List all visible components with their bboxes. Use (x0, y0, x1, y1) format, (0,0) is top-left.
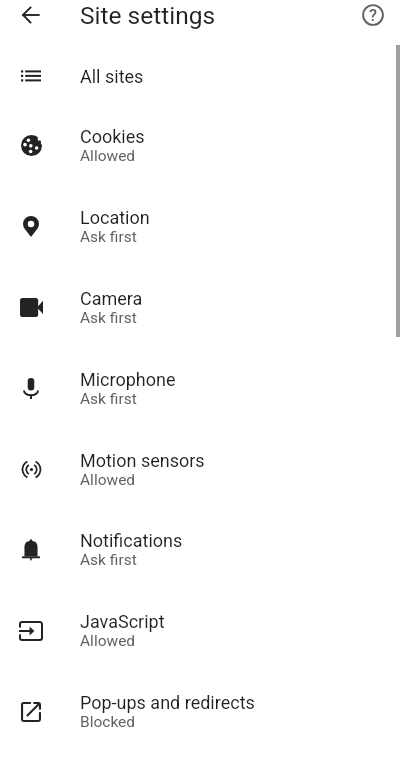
staticText: Pop-ups and redirects (80, 692, 255, 713)
staticText: Location (80, 207, 150, 228)
staticText: All sites (80, 66, 144, 87)
button[interactable]: Back (7, 0, 55, 31)
staticText: Ask first (80, 390, 137, 408)
button[interactable]: Location (0, 186, 400, 267)
button[interactable]: All sites (0, 47, 400, 106)
staticText: Blocked (80, 713, 136, 731)
staticText: Site settings (80, 1, 216, 30)
staticText: Allowed (80, 632, 136, 650)
staticText: Notifications (80, 530, 183, 551)
staticText: JavaScript (80, 611, 165, 632)
staticText: ? (369, 6, 378, 25)
staticText: Camera (80, 288, 143, 309)
button[interactable]: Help (349, 0, 397, 31)
button[interactable]: Camera (0, 267, 400, 348)
button[interactable]: Pop-ups and redirects (0, 671, 400, 752)
button[interactable]: Cookies (0, 105, 400, 186)
button[interactable]: JavaScript (0, 590, 400, 671)
staticText: Allowed (80, 147, 136, 165)
button[interactable]: Notifications (0, 509, 400, 590)
staticText: Allowed (80, 471, 136, 489)
staticText: Ask first (80, 551, 137, 569)
staticText: Microphone (80, 369, 176, 390)
button[interactable]: Motion sensors (0, 429, 400, 510)
staticText: Ask first (80, 228, 137, 246)
staticText: Cookies (80, 126, 145, 147)
staticText: Ask first (80, 309, 137, 327)
staticText: Motion sensors (80, 450, 205, 471)
button[interactable]: Microphone (0, 348, 400, 429)
